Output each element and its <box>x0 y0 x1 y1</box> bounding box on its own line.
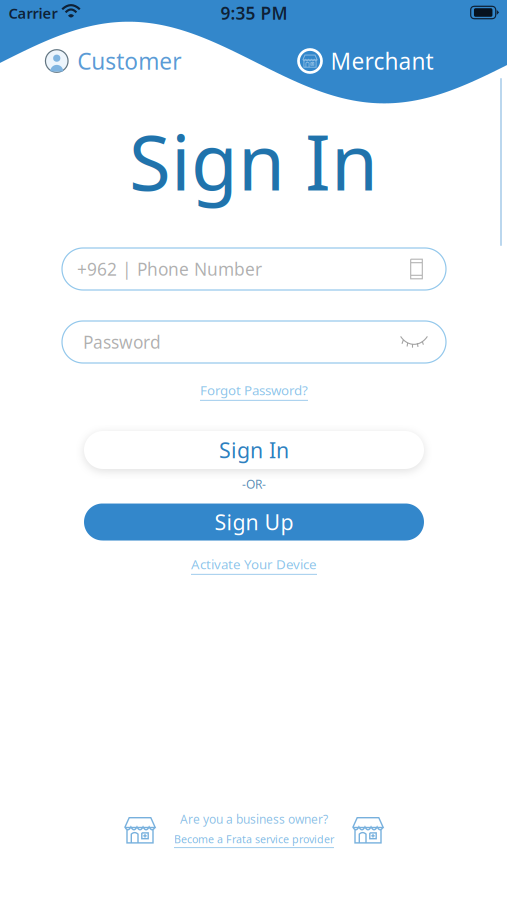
staticText: Sign Up <box>214 508 293 536</box>
staticText: Phone Number <box>137 257 262 280</box>
staticText: Sign In <box>129 110 378 211</box>
staticText: Activate Your Device <box>191 555 317 573</box>
staticText: -OR- <box>242 476 266 492</box>
staticText: Merchant <box>330 46 433 76</box>
staticText: Become a Frata service provider <box>174 832 334 846</box>
staticText: Carrier <box>8 3 57 23</box>
button[interactable]: Sign In <box>84 431 424 469</box>
button[interactable]: Merchant <box>293 39 438 83</box>
staticText: Forgot Password? <box>200 381 308 399</box>
button[interactable]: Forgot Password? <box>194 377 314 405</box>
button[interactable]: Sign Up <box>84 503 424 540</box>
button[interactable]: Become a Frata service provider <box>170 829 338 851</box>
staticText: Sign In <box>219 436 289 464</box>
staticText: Are you a business owner? <box>180 811 328 827</box>
staticText: Customer <box>77 46 181 76</box>
staticText: +962 | <box>77 257 132 280</box>
button[interactable]: Activate Your Device <box>185 551 323 579</box>
staticText: Password <box>83 330 161 353</box>
staticText: 9:35 PM <box>220 1 287 24</box>
button[interactable]: Customer <box>40 39 186 83</box>
